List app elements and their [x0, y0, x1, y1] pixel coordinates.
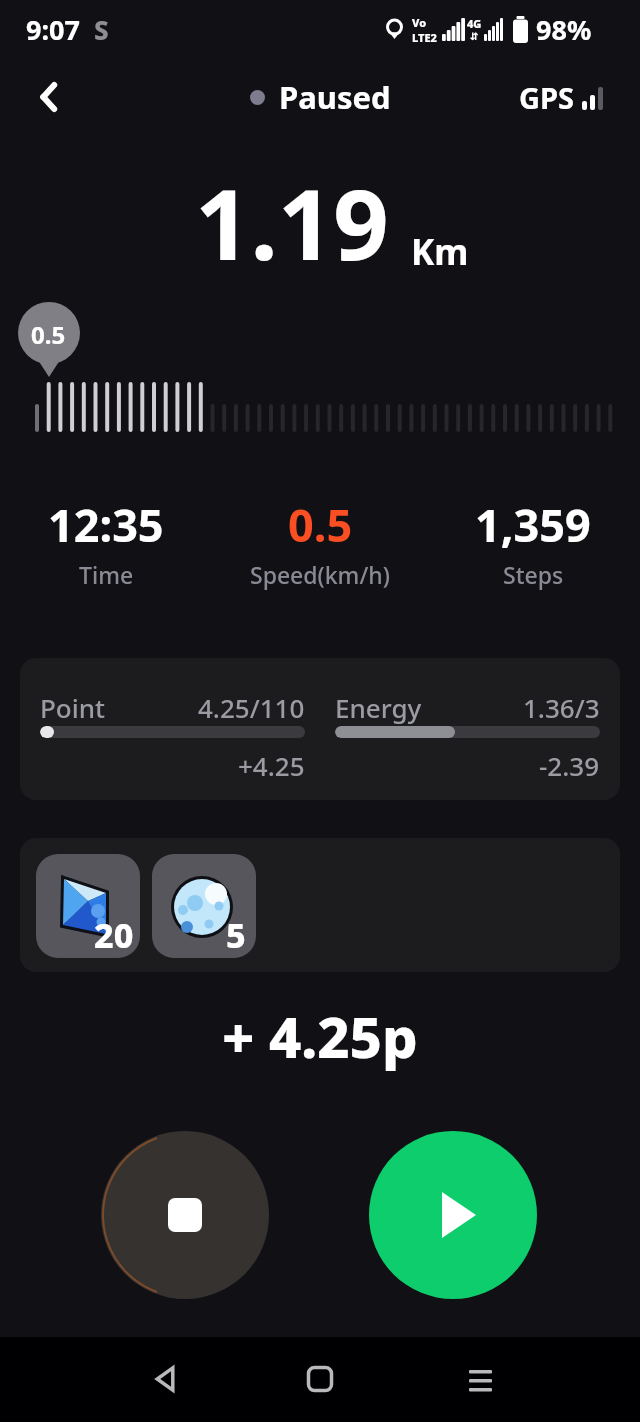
staticText: 5 — [226, 912, 246, 958]
button[interactable]: Point — [20, 658, 620, 800]
button[interactable] — [292, 1351, 348, 1407]
staticText: -2.39 — [539, 748, 600, 783]
staticText: Point — [40, 690, 106, 725]
staticText: 9:07 — [26, 11, 80, 48]
staticText: 4.25/110 — [198, 690, 305, 725]
staticText: Speed(km/h) — [250, 559, 390, 590]
button[interactable]: 20 — [36, 854, 140, 958]
staticText: LTE2 — [412, 30, 437, 45]
staticText: Paused — [279, 76, 391, 118]
staticText: S — [94, 12, 109, 47]
staticText: Km — [411, 228, 469, 276]
button[interactable]: 5 — [152, 854, 256, 958]
button[interactable]: GPS — [519, 78, 608, 117]
staticText: + 4.25p — [222, 998, 418, 1074]
staticText: 4G — [467, 16, 482, 31]
staticText: 1,359 — [475, 494, 591, 555]
staticText: GPS — [519, 78, 574, 117]
button[interactable] — [369, 1131, 537, 1299]
staticText: 98% — [536, 11, 592, 48]
staticText: 20 — [94, 912, 134, 958]
staticText: 12:35 — [48, 494, 164, 555]
staticText: Steps — [503, 559, 564, 590]
button[interactable] — [452, 1351, 508, 1407]
button[interactable] — [24, 66, 74, 128]
button[interactable] — [137, 1351, 193, 1407]
staticText: Time — [79, 559, 134, 590]
staticText: Energy — [335, 690, 422, 725]
staticText: 0.5 — [31, 318, 66, 351]
staticText: 0.5 — [288, 494, 353, 555]
staticText: Vo — [412, 15, 427, 30]
staticText: ⇵ — [470, 31, 479, 43]
button[interactable] — [101, 1131, 269, 1299]
staticText: +4.25 — [238, 748, 305, 783]
staticText: 1.19 — [195, 156, 389, 288]
staticText: 1.36/3 — [523, 690, 600, 725]
